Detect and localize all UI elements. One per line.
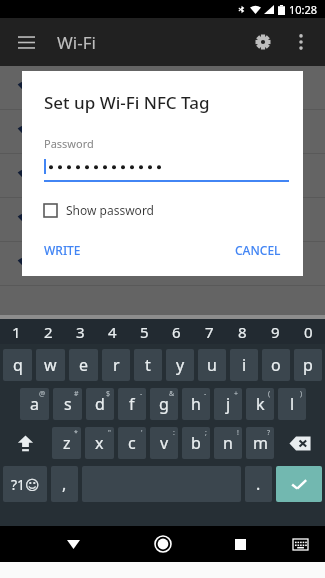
button[interactable]: Back xyxy=(56,527,90,561)
button[interactable]: Switch keyboard xyxy=(285,529,315,559)
staticText: ?1☺ xyxy=(11,475,40,494)
button[interactable]: i xyxy=(230,349,258,381)
button[interactable]: WRITE xyxy=(36,236,89,264)
staticText: 0 xyxy=(304,322,313,342)
staticText: + xyxy=(234,389,239,399)
button[interactable]: j xyxy=(214,388,242,420)
button[interactable]: , xyxy=(51,466,78,502)
button[interactable]: 1 xyxy=(0,319,32,344)
button[interactable]: c xyxy=(118,427,146,459)
button[interactable]: Home xyxy=(146,527,180,561)
staticText: : xyxy=(173,428,175,438)
button[interactable]: b xyxy=(182,427,210,459)
staticText: Show password xyxy=(66,202,154,218)
button[interactable]: More options xyxy=(285,26,317,58)
button[interactable]: FireNation xyxy=(0,242,325,285)
button[interactable]: 0 xyxy=(292,319,325,344)
button[interactable]: 9 xyxy=(259,319,292,344)
button[interactable]: u xyxy=(198,349,226,381)
button[interactable]: d xyxy=(86,388,114,420)
button[interactable]: s xyxy=(53,388,82,420)
staticText: n xyxy=(223,432,233,454)
button[interactable]: 2 xyxy=(32,319,64,344)
staticText: Electric Sea xyxy=(57,210,132,229)
button[interactable]: q xyxy=(3,349,32,381)
button[interactable]: g xyxy=(150,388,178,420)
button[interactable]: o xyxy=(262,349,290,381)
staticText: ( xyxy=(268,389,271,399)
button[interactable]: Show password xyxy=(44,202,154,218)
button[interactable]: n xyxy=(214,427,242,459)
staticText: 10:28 xyxy=(289,2,318,17)
button[interactable]: CANCEL xyxy=(227,236,289,264)
staticText: 1 xyxy=(12,322,21,342)
staticText: b xyxy=(191,432,201,454)
button[interactable]: Recents xyxy=(223,527,257,561)
staticText: 2 xyxy=(44,322,53,342)
staticText: 3 xyxy=(76,322,85,342)
button[interactable]: 5 xyxy=(128,319,160,344)
button[interactable]: Enter xyxy=(276,466,322,502)
button[interactable]: t xyxy=(134,349,162,381)
button[interactable]: Electric Sea xyxy=(0,198,325,241)
staticText: 5 xyxy=(140,322,149,342)
staticText: 7 xyxy=(205,322,214,342)
button[interactable]: l xyxy=(278,388,306,420)
button[interactable]: . xyxy=(245,466,272,502)
staticText: u xyxy=(207,354,217,376)
button[interactable]: 3 xyxy=(64,319,96,344)
button[interactable]: 7 xyxy=(193,319,226,344)
button[interactable]: k xyxy=(246,388,274,420)
button[interactable]: p xyxy=(294,349,322,381)
staticText: CANCEL xyxy=(235,242,281,258)
staticText: & xyxy=(169,389,175,399)
staticText: 4 xyxy=(108,322,117,342)
button[interactable]: w xyxy=(36,349,65,381)
button[interactable]: m xyxy=(246,427,274,459)
staticText: e xyxy=(79,354,89,376)
button[interactable]: f xyxy=(118,388,146,420)
button[interactable]: h xyxy=(182,388,210,420)
staticText: a xyxy=(30,393,39,415)
button[interactable]: r xyxy=(102,349,130,381)
staticText: o xyxy=(271,354,281,376)
button[interactable]: 8 xyxy=(226,319,259,344)
button[interactable]: Backspace xyxy=(276,425,324,461)
button[interactable]: Navigation drawer xyxy=(8,24,44,60)
button[interactable]: Shift xyxy=(1,425,50,461)
button[interactable]: y xyxy=(166,349,194,381)
staticText: r xyxy=(113,354,120,376)
button[interactable]: x xyxy=(85,427,114,459)
staticText: h xyxy=(191,393,201,415)
staticText: v xyxy=(160,432,169,454)
staticText: " xyxy=(108,428,111,438)
button[interactable]: e xyxy=(69,349,98,381)
button[interactable]: Settings xyxy=(245,24,281,60)
staticText: p xyxy=(303,354,313,376)
button[interactable]: a xyxy=(20,388,49,420)
staticText: f xyxy=(129,393,135,415)
staticText: Password xyxy=(44,136,94,151)
staticText: , xyxy=(62,473,67,495)
staticText: 6 xyxy=(172,322,181,342)
staticText: l xyxy=(290,393,295,415)
button[interactable]: 6 xyxy=(160,319,193,344)
staticText: j xyxy=(226,393,231,415)
button[interactable]: 4 xyxy=(96,319,128,344)
staticText: z xyxy=(63,432,71,454)
staticText: q xyxy=(13,354,23,376)
staticText: ? xyxy=(267,428,271,438)
button[interactable]: v xyxy=(150,427,178,459)
button[interactable] xyxy=(0,110,325,153)
button[interactable]: ?1☺ xyxy=(3,466,47,502)
button[interactable]: z xyxy=(52,427,81,459)
button[interactable] xyxy=(0,154,325,197)
staticText: Set up Wi-Fi NFC Tag xyxy=(44,91,210,114)
staticText: t xyxy=(145,354,151,376)
staticText: ; xyxy=(205,428,207,438)
staticText: - xyxy=(140,389,143,399)
button[interactable] xyxy=(0,66,325,109)
staticText: . xyxy=(256,473,261,495)
